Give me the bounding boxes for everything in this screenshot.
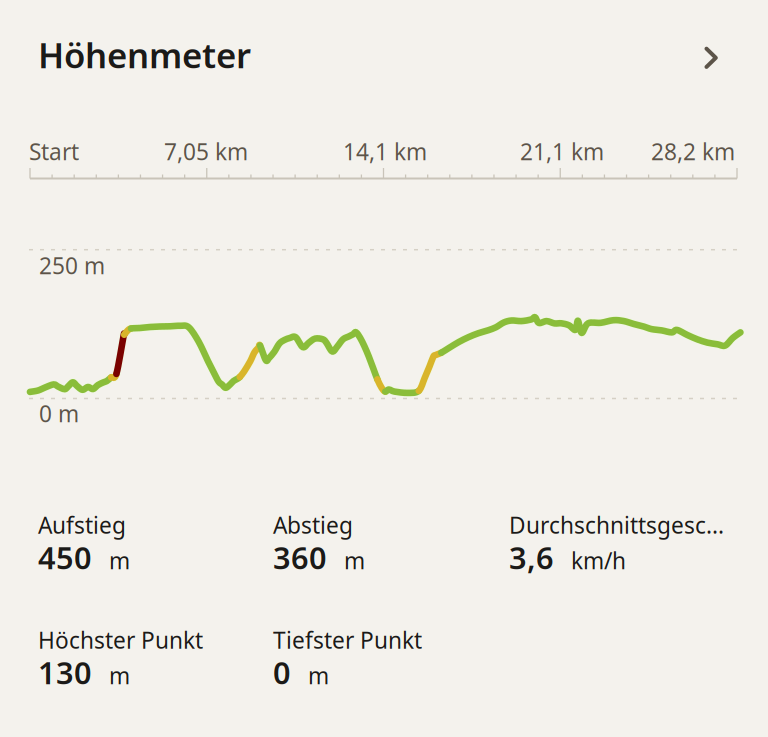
button[interactable]: Höhenmeter <box>0 0 768 112</box>
staticText: Abstieg <box>273 510 353 540</box>
staticText: m <box>109 545 130 576</box>
staticText: Durchschnittsgesc... <box>509 510 724 540</box>
staticText: Höhenmeter <box>38 32 251 78</box>
staticText: 250 m <box>39 250 105 281</box>
staticText: 7,05 km <box>164 136 248 167</box>
staticText: 0 <box>273 652 291 693</box>
staticText: 130 <box>38 652 92 693</box>
staticText: 360 <box>273 537 327 578</box>
staticText: Aufstieg <box>38 510 126 540</box>
staticText: km/h <box>571 545 626 576</box>
staticText: 21,1 km <box>520 136 604 167</box>
staticText: 14,1 km <box>343 136 427 167</box>
staticText: 450 <box>38 537 92 578</box>
staticText: m <box>109 660 130 691</box>
staticText: m <box>308 660 329 691</box>
staticText: Höchster Punkt <box>38 625 203 655</box>
staticText: 28,2 km <box>651 136 735 167</box>
staticText: 3,6 <box>509 537 554 578</box>
staticText: Start <box>29 136 79 167</box>
staticText: 0 m <box>39 398 79 429</box>
staticText: m <box>344 545 365 576</box>
staticText: Tiefster Punkt <box>273 625 422 655</box>
